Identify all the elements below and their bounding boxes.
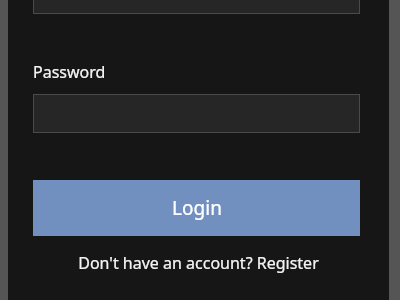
staticText: Don't have an account? Register	[78, 252, 319, 274]
button[interactable]: Don't have an account? Register	[8, 252, 389, 274]
button[interactable]: Login	[33, 180, 360, 236]
button[interactable]: Password input field	[33, 94, 360, 133]
staticText: Login	[172, 195, 222, 221]
button[interactable]	[33, 0, 360, 14]
staticText: Password	[33, 61, 106, 83]
